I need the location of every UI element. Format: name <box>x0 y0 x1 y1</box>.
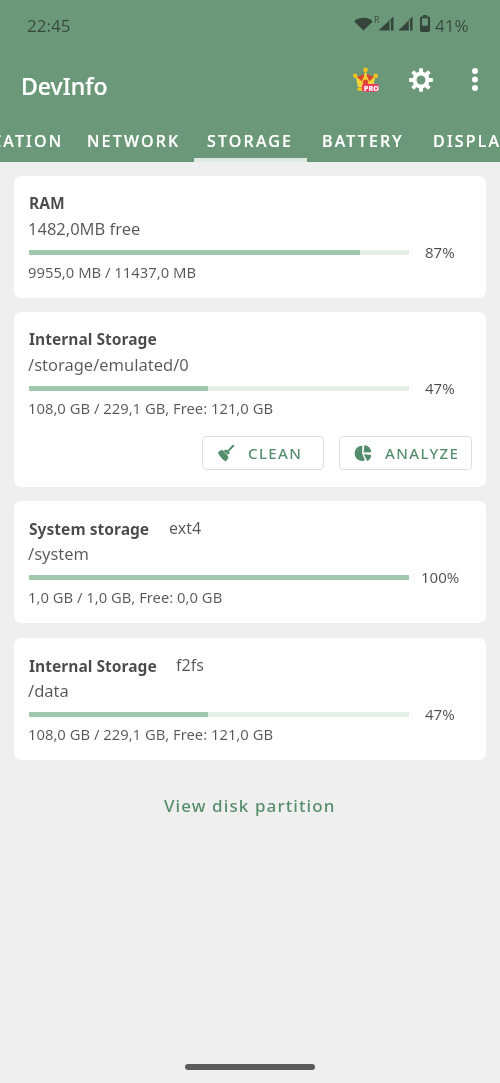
staticText: DISPLAY <box>433 130 500 152</box>
staticText: BATTERY <box>322 130 404 152</box>
staticText: /storage/emulated/0 <box>28 353 189 375</box>
staticText: PRO <box>364 84 380 94</box>
button[interactable]: Internal Storage <box>14 312 486 487</box>
staticText: 1482,0MB free <box>28 217 141 239</box>
staticText: CATION <box>0 130 64 152</box>
staticText: R <box>374 13 380 25</box>
staticText: 108,0 GB / 229,1 GB, Free: 121,0 GB <box>28 724 274 744</box>
button[interactable]: View disk partition <box>148 782 352 829</box>
button[interactable]: RAM <box>14 176 486 298</box>
staticText: ext4 <box>169 517 202 539</box>
staticText: System storage <box>29 518 150 539</box>
staticText: RAM <box>29 192 65 213</box>
button[interactable]: Upgrade to Pro <box>343 57 388 102</box>
staticText: 47% <box>425 378 455 398</box>
staticText: Internal Storage <box>29 328 157 349</box>
staticText: 1,0 GB / 1,0 GB, Free: 0,0 GB <box>28 587 223 607</box>
staticText: 87% <box>425 242 455 262</box>
staticText: ANALYZE <box>385 443 460 463</box>
staticText: CLEAN <box>248 443 303 463</box>
staticText: NETWORK <box>87 130 181 152</box>
staticText: View disk partition <box>164 794 336 817</box>
staticText: 100% <box>421 567 460 587</box>
button[interactable]: NETWORK <box>75 116 192 162</box>
staticText: f2fs <box>176 654 204 676</box>
button[interactable]: CLEAN <box>202 436 324 470</box>
button[interactable]: System storage <box>14 501 486 623</box>
staticText: 9955,0 MB / 11437,0 MB <box>28 262 197 282</box>
button[interactable]: Settings <box>398 57 443 102</box>
staticText: 47% <box>425 704 455 724</box>
button[interactable]: DISPLAY <box>420 116 500 162</box>
button[interactable]: More options <box>452 57 497 102</box>
button[interactable]: CATION <box>0 116 96 162</box>
staticText: 41% <box>435 14 469 37</box>
button[interactable]: STORAGE <box>194 116 307 162</box>
staticText: /data <box>28 679 69 701</box>
button[interactable]: ANALYZE <box>339 436 472 470</box>
button[interactable]: Internal Storage <box>14 638 486 760</box>
button[interactable]: BATTERY <box>310 116 415 162</box>
staticText: DevInfo <box>21 70 108 101</box>
staticText: STORAGE <box>207 130 294 152</box>
staticText: 108,0 GB / 229,1 GB, Free: 121,0 GB <box>28 398 274 418</box>
staticText: /system <box>28 542 90 564</box>
staticText: Internal Storage <box>29 655 157 676</box>
staticText: 22:45 <box>27 14 71 37</box>
